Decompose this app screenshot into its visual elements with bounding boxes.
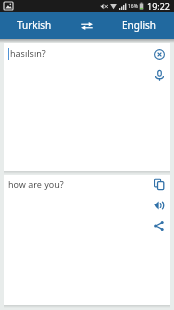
staticText: hasılsın? (10, 47, 46, 59)
button[interactable]: English (105, 12, 174, 39)
staticText: how are you? (8, 178, 64, 190)
button[interactable]: Share (151, 218, 167, 234)
staticText: 19:22 (147, 0, 171, 12)
button[interactable]: Swap languages (69, 12, 105, 39)
staticText: English (122, 18, 157, 32)
staticText: Turkish (17, 18, 52, 32)
button[interactable]: Clear text (151, 46, 167, 62)
staticText: 16% (128, 3, 138, 10)
button[interactable]: Listen (151, 197, 167, 213)
button[interactable]: Copy (151, 176, 167, 192)
button[interactable]: Speak (151, 67, 167, 83)
button[interactable]: Turkish (0, 12, 69, 39)
